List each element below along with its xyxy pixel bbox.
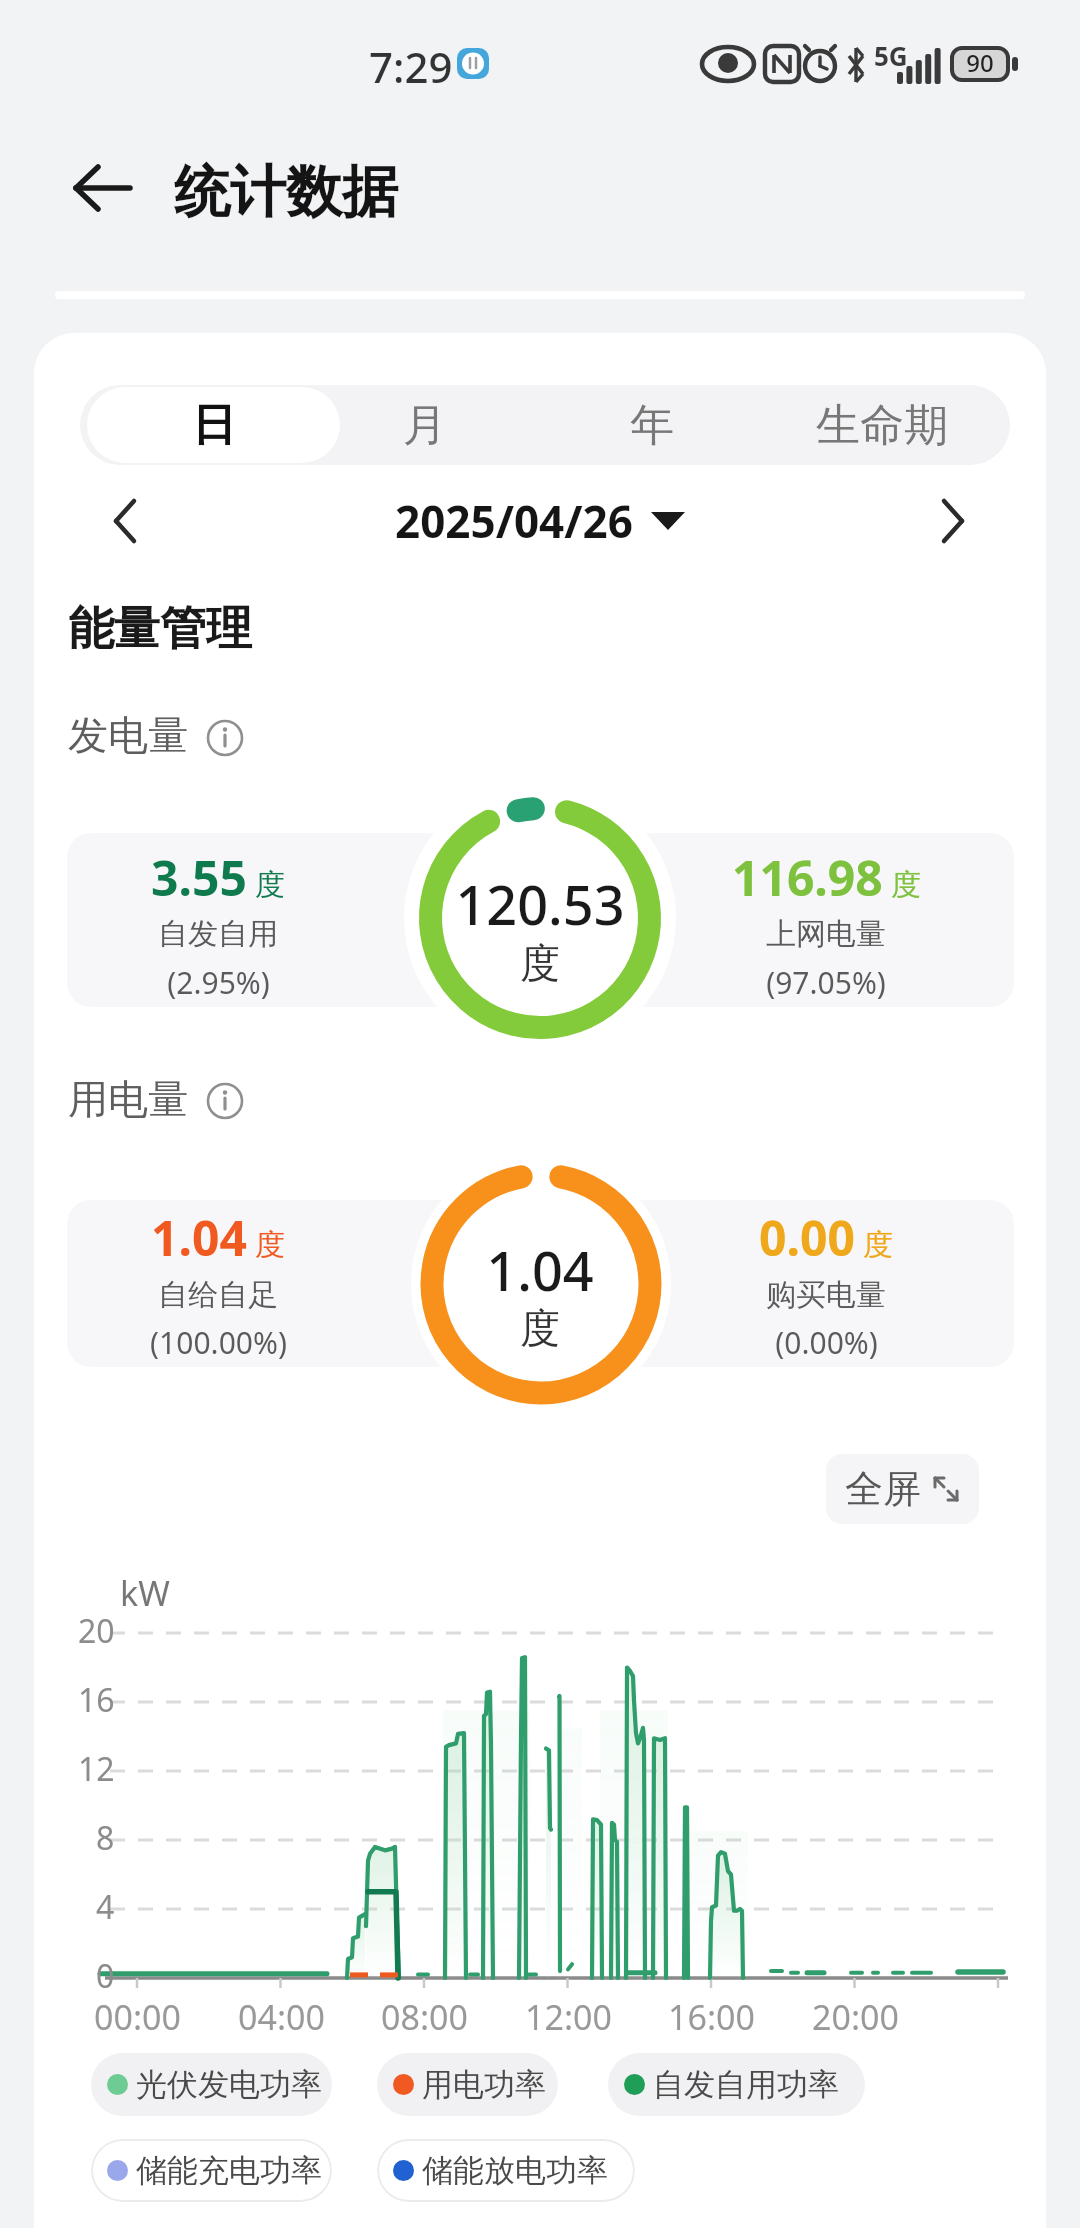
staticText: 04:00 <box>238 1994 325 2040</box>
staticText: 生命期 <box>816 398 948 453</box>
staticText: 自发自用功率 <box>653 2065 839 2104</box>
staticText: 3.55 <box>151 845 247 910</box>
staticText: 度 <box>520 938 560 988</box>
button[interactable] <box>70 160 140 216</box>
staticText: 光伏发电功率 <box>136 2065 322 2104</box>
staticText: 用电功率 <box>422 2065 546 2104</box>
staticText: 度 <box>855 1223 893 1264</box>
staticText: 储能放电功率 <box>422 2151 608 2190</box>
staticText: 日 <box>192 398 236 453</box>
button[interactable]: 2025/04/26 <box>340 490 740 552</box>
staticText: (0.00%) <box>775 1322 878 1363</box>
staticText: (97.05%) <box>766 962 886 1003</box>
staticText: 90 <box>966 46 994 79</box>
staticText: 12:00 <box>525 1994 612 2040</box>
button[interactable]: 月 <box>340 387 510 463</box>
staticText: 120.53 <box>455 867 625 941</box>
staticText: 储能充电功率 <box>136 2151 322 2190</box>
staticText: 8 <box>96 1816 115 1860</box>
staticText: 116.98 <box>732 845 883 910</box>
button[interactable]: 自发自用功率 <box>608 2053 865 2116</box>
staticText: 16:00 <box>668 1994 755 2040</box>
button[interactable]: 日 <box>87 387 340 463</box>
button[interactable]: 用电功率 <box>377 2053 558 2116</box>
staticText: 度 <box>247 863 285 904</box>
button[interactable]: 储能充电功率 <box>91 2139 332 2202</box>
button[interactable] <box>205 718 245 758</box>
staticText: (100.00%) <box>150 1322 287 1363</box>
staticText: 7:29 <box>369 38 453 95</box>
staticText: (2.95%) <box>167 962 270 1003</box>
staticText: 2025/04/26 <box>395 491 633 551</box>
staticText: 5G <box>874 38 908 73</box>
staticText: 0 <box>96 1954 115 1998</box>
staticText: 月 <box>403 398 447 453</box>
staticText: 00:00 <box>94 1994 181 2040</box>
button[interactable]: 光伏发电功率 <box>91 2053 332 2116</box>
staticText: 度 <box>247 1223 285 1264</box>
staticText: 20:00 <box>812 1994 899 2040</box>
button[interactable] <box>205 1081 245 1121</box>
staticText: 16 <box>78 1678 115 1722</box>
staticText: 全屏 <box>845 1465 921 1513</box>
staticText: 4 <box>96 1885 115 1929</box>
staticText: 发电量 <box>68 710 188 760</box>
staticText: 用电量 <box>68 1074 188 1124</box>
button[interactable] <box>926 495 978 547</box>
staticText: 统计数据 <box>174 157 398 228</box>
staticText: 自发自用 <box>158 915 278 953</box>
button[interactable]: 生命期 <box>797 387 967 463</box>
button[interactable]: 年 <box>567 387 737 463</box>
staticText: 上网电量 <box>766 915 886 953</box>
staticText: 20 <box>78 1609 115 1653</box>
staticText: 12 <box>78 1747 115 1791</box>
staticText: 能量管理 <box>68 600 252 658</box>
button[interactable]: 全屏 <box>826 1454 979 1524</box>
button[interactable] <box>100 495 152 547</box>
staticText: 购买电量 <box>766 1276 886 1314</box>
staticText: 0.00 <box>759 1205 855 1270</box>
staticText: 1.04 <box>151 1205 247 1270</box>
staticText: 1.04 <box>486 1233 594 1307</box>
button[interactable]: 储能放电功率 <box>377 2139 635 2202</box>
staticText: 年 <box>630 398 674 453</box>
staticText: 度 <box>520 1303 560 1353</box>
staticText: 度 <box>883 863 921 904</box>
staticText: 08:00 <box>381 1994 468 2040</box>
staticText: 自给自足 <box>158 1276 278 1314</box>
staticText: kW <box>120 1570 170 1616</box>
